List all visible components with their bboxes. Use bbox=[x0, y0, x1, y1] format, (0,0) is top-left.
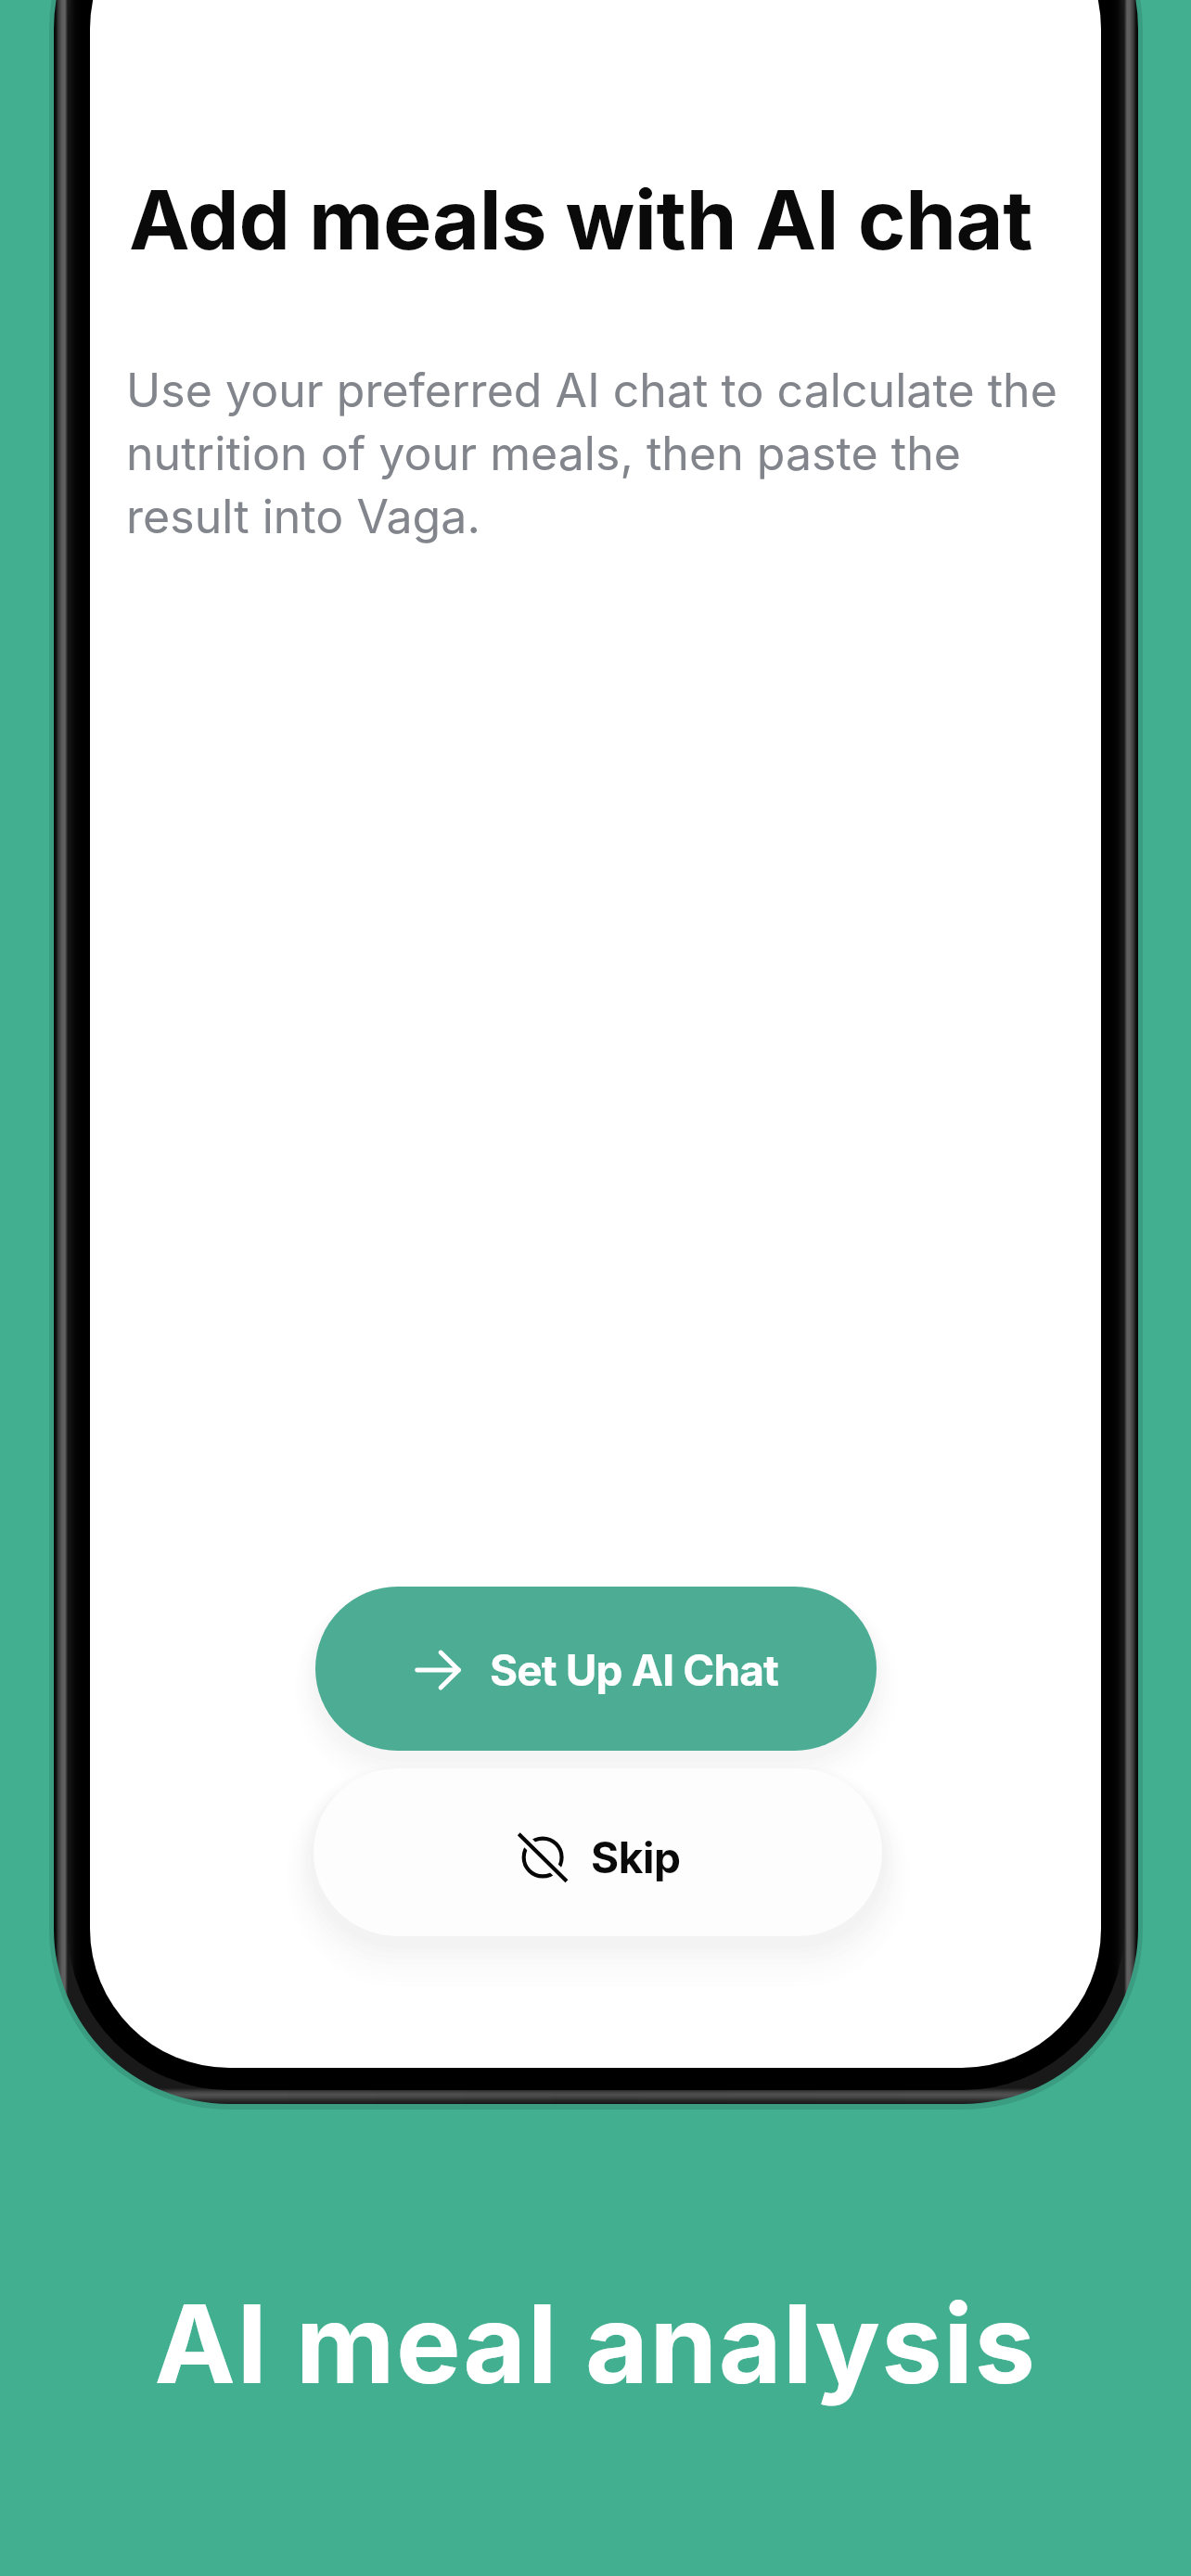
other: Set Up AI Chat bbox=[414, 1646, 462, 1694]
button[interactable]: Set Up AI Chat bbox=[315, 1587, 877, 1751]
staticText: Add meals with AI chat bbox=[129, 171, 1075, 269]
staticText: Skip bbox=[591, 1831, 681, 1883]
button[interactable]: Skip bbox=[314, 1768, 882, 1936]
staticText: AI meal analysis bbox=[0, 2278, 1191, 2410]
other: Skip bbox=[516, 1831, 568, 1883]
staticText: Set Up AI Chat bbox=[490, 1644, 778, 1696]
staticText: Use your preferred AI chat to calculate … bbox=[126, 363, 1082, 545]
